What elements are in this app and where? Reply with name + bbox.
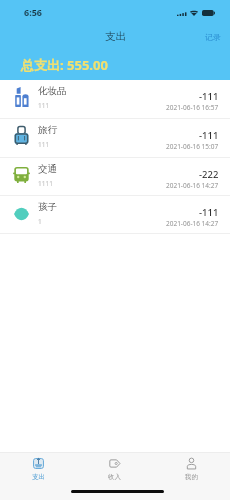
staticText: 收入	[108, 473, 121, 481]
staticText: 我的	[185, 473, 198, 481]
staticText: -222	[199, 168, 219, 181]
button[interactable]: Expenses tab	[0, 453, 76, 487]
staticText: 旅行	[38, 124, 57, 136]
other: Profile tab	[185, 457, 198, 470]
staticText: -111	[199, 90, 219, 103]
staticText: 交通	[38, 163, 57, 175]
button[interactable]: Income tab	[76, 453, 153, 487]
staticText: 支出	[32, 473, 45, 481]
staticText: 记录	[205, 32, 221, 42]
staticText: 2021-06-16 15:07	[166, 142, 219, 151]
staticText: -111	[199, 206, 219, 219]
staticText: 2021-06-16 16:57	[166, 103, 219, 112]
staticText: 支出	[105, 30, 126, 43]
staticText: 1	[38, 217, 42, 226]
button[interactable]: 交通	[0, 158, 230, 196]
button[interactable]: 旅行	[0, 119, 230, 158]
staticText: 孩子	[38, 201, 57, 213]
staticText: -111	[199, 129, 219, 142]
staticText: 化妆品	[38, 85, 67, 97]
staticText: 2021-06-16 14:27	[166, 181, 219, 190]
staticText: 1111	[38, 179, 53, 188]
staticText: 111	[38, 140, 50, 149]
staticText: 6:56	[24, 6, 42, 18]
button[interactable]: 化妆品	[0, 80, 230, 119]
other: Income tab	[108, 457, 121, 470]
button[interactable]: 记录	[195, 27, 230, 45]
staticText: 111	[38, 101, 50, 110]
button[interactable]: 孩子	[0, 196, 230, 234]
other: Expenses tab	[32, 457, 45, 470]
staticText: 总支出: 555.00	[21, 56, 108, 74]
button[interactable]: Profile tab	[153, 453, 230, 487]
staticText: 2021-06-16 14:27	[166, 219, 219, 228]
